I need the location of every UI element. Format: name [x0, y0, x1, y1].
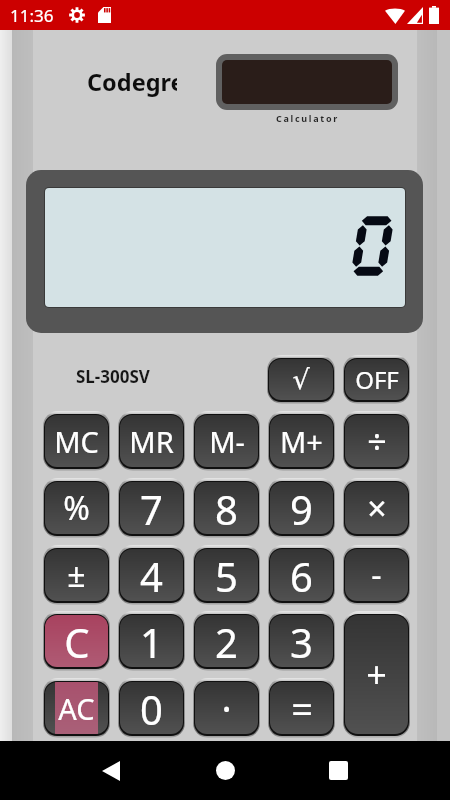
staticText: AC: [58, 689, 95, 728]
button[interactable]: ·: [195, 682, 258, 734]
staticText: ×: [367, 485, 387, 531]
button[interactable]: ÷: [345, 415, 408, 467]
button[interactable]: Back: [75, 741, 147, 800]
button[interactable]: MR: [120, 415, 183, 467]
button[interactable]: 8: [195, 482, 258, 534]
button[interactable]: %: [45, 482, 108, 534]
button[interactable]: 1: [120, 615, 183, 667]
staticText: 4: [140, 549, 163, 601]
button[interactable]: =: [270, 682, 333, 734]
staticText: OFF: [355, 363, 399, 396]
staticText: =: [291, 682, 313, 734]
button[interactable]: OFF: [345, 359, 408, 400]
staticText: MR: [129, 422, 174, 461]
button[interactable]: M-: [195, 415, 258, 467]
staticText: 5: [215, 549, 238, 601]
staticText: Codegress: [87, 66, 177, 98]
staticText: √: [292, 364, 310, 395]
staticText: -: [371, 553, 382, 597]
staticText: 0: [140, 682, 163, 734]
button[interactable]: 2: [195, 615, 258, 667]
button[interactable]: Recent apps: [302, 741, 374, 800]
button[interactable]: AC: [45, 682, 108, 734]
staticText: 1: [140, 615, 163, 667]
button[interactable]: ±: [45, 549, 108, 601]
staticText: C: [64, 615, 90, 667]
staticText: %: [63, 486, 90, 530]
button[interactable]: 9: [270, 482, 333, 534]
button[interactable]: 5: [195, 549, 258, 601]
button[interactable]: M+: [270, 415, 333, 467]
button[interactable]: 6: [270, 549, 333, 601]
button[interactable]: Home: [189, 741, 261, 800]
button[interactable]: √: [269, 359, 333, 400]
staticText: 6: [290, 549, 313, 601]
staticText: ±: [67, 553, 86, 597]
button[interactable]: MC: [45, 415, 108, 467]
button[interactable]: ×: [345, 482, 408, 534]
staticText: 2: [215, 615, 238, 667]
staticText: ÷: [367, 418, 387, 464]
staticText: MC: [54, 422, 99, 461]
staticText: ·: [221, 682, 232, 734]
staticText: SL-300SV: [76, 365, 150, 388]
button[interactable]: 0: [120, 682, 183, 734]
staticText: 3: [290, 615, 313, 667]
staticText: 7: [140, 482, 163, 534]
button[interactable]: C: [45, 615, 108, 667]
button[interactable]: 4: [120, 549, 183, 601]
staticText: M+: [280, 422, 323, 461]
button[interactable]: 7: [120, 482, 183, 534]
button[interactable]: -: [345, 549, 408, 601]
button[interactable]: 3: [270, 615, 333, 667]
staticText: Calculator: [276, 112, 339, 124]
staticText: 11:36: [10, 4, 54, 27]
button[interactable]: +: [345, 615, 408, 734]
staticText: 8: [215, 482, 238, 534]
staticText: 9: [290, 482, 313, 534]
staticText: M-: [209, 422, 245, 461]
staticText: +: [366, 650, 387, 699]
